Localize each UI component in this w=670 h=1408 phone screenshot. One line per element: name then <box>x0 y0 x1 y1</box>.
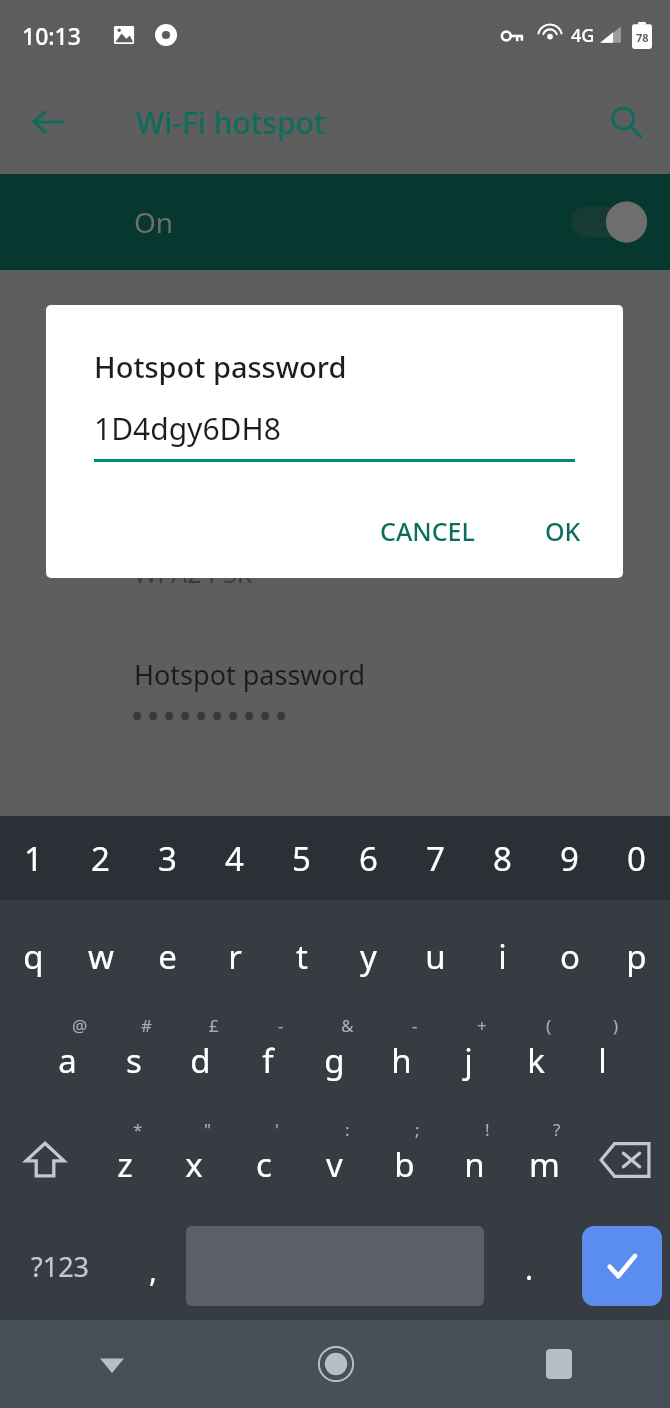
button[interactable]: Shift <box>0 1108 90 1212</box>
staticText: u <box>425 934 446 979</box>
button[interactable]: 1 <box>0 816 67 900</box>
staticText: Wi-Fi hotspot <box>136 102 326 143</box>
button[interactable]: s <box>100 1004 167 1108</box>
button[interactable]: ?123 <box>0 1212 120 1320</box>
button[interactable]: v <box>299 1108 369 1212</box>
staticText: 5 <box>292 836 311 881</box>
staticText: CANCEL <box>380 514 475 548</box>
staticText: 4G <box>571 23 595 48</box>
staticText: 3 <box>158 836 177 881</box>
button[interactable]: Backspace <box>579 1108 670 1212</box>
button[interactable]: CANCEL <box>364 504 491 558</box>
button[interactable]: . <box>484 1212 574 1320</box>
button[interactable]: Enter <box>582 1226 662 1306</box>
button[interactable]: e <box>134 900 201 1004</box>
staticText: t <box>296 934 308 979</box>
staticText: n <box>464 1142 485 1187</box>
staticText: z <box>117 1142 133 1187</box>
button[interactable]: f <box>234 1004 301 1108</box>
button[interactable]: u <box>402 900 469 1004</box>
staticText: ' <box>275 1118 279 1141</box>
staticText: * <box>133 1118 143 1141</box>
staticText: 1D4dgy6DH8 <box>94 408 281 449</box>
button[interactable]: Back <box>0 1320 224 1408</box>
staticText: f <box>262 1038 274 1083</box>
button[interactable]: 3 <box>134 816 201 900</box>
button[interactable]: 5 <box>268 816 335 900</box>
staticText: : <box>345 1118 350 1141</box>
button[interactable]: c <box>229 1108 299 1212</box>
staticText: WPA2 PSK <box>134 556 253 590</box>
button[interactable]: o <box>536 900 603 1004</box>
button[interactable]: h <box>368 1004 435 1108</box>
staticText: r <box>228 934 242 979</box>
staticText: a <box>58 1038 77 1083</box>
button[interactable]: w <box>67 900 134 1004</box>
button[interactable]: d <box>167 1004 234 1108</box>
staticText: v <box>326 1142 343 1187</box>
staticText: j <box>464 1038 473 1083</box>
staticText: 9 <box>560 836 579 881</box>
button[interactable]: t <box>268 900 335 1004</box>
button[interactable]: 4 <box>201 816 268 900</box>
button[interactable]: b <box>369 1108 439 1212</box>
button[interactable]: Recent apps <box>447 1320 670 1408</box>
button[interactable]: 0 <box>603 816 670 900</box>
staticText: w <box>88 934 114 979</box>
staticText: q <box>23 934 44 979</box>
staticText: ?123 <box>31 1248 90 1285</box>
staticText: y <box>360 934 377 979</box>
button[interactable]: z <box>90 1108 159 1212</box>
button[interactable]: j <box>435 1004 502 1108</box>
button[interactable]: OK <box>529 504 597 558</box>
button[interactable]: 6 <box>335 816 402 900</box>
button[interactable]: On <box>0 174 670 270</box>
button[interactable]: a <box>34 1004 100 1108</box>
button[interactable]: y <box>335 900 402 1004</box>
button[interactable]: x <box>159 1108 229 1212</box>
button[interactable]: 2 <box>67 816 134 900</box>
button[interactable]: i <box>469 900 536 1004</box>
staticText: 78 <box>636 30 649 45</box>
button[interactable]: k <box>502 1004 569 1108</box>
staticText: c <box>256 1142 272 1187</box>
staticText: m <box>529 1142 560 1187</box>
staticText: s <box>126 1038 142 1083</box>
button[interactable]: g <box>301 1004 368 1108</box>
button[interactable]: p <box>603 900 670 1004</box>
button[interactable]: r <box>201 900 268 1004</box>
button[interactable]: 8 <box>469 816 536 900</box>
staticText: OK <box>545 514 581 548</box>
button[interactable]: q <box>0 900 67 1004</box>
button[interactable]: Home <box>224 1320 447 1408</box>
staticText: 4 <box>225 836 244 881</box>
staticText: g <box>324 1038 345 1083</box>
staticText: 1 <box>24 836 43 881</box>
button[interactable]: Search <box>598 94 654 150</box>
button[interactable]: n <box>439 1108 509 1212</box>
staticText: 8 <box>493 836 512 881</box>
staticText: e <box>158 934 177 979</box>
staticText: - <box>412 1014 418 1037</box>
button[interactable]: , <box>120 1212 186 1320</box>
staticText: 2 <box>91 836 110 881</box>
staticText: 7 <box>426 836 445 881</box>
staticText: # <box>141 1014 152 1037</box>
staticText: o <box>560 934 580 979</box>
staticText: , <box>149 1250 158 1291</box>
button[interactable]: Back <box>20 94 76 150</box>
staticText: x <box>185 1142 203 1187</box>
button[interactable]: 9 <box>536 816 603 900</box>
staticText: Hotspot password <box>134 656 366 693</box>
staticText: ! <box>485 1118 490 1141</box>
staticText: . <box>525 1248 534 1289</box>
staticText: 6 <box>359 836 378 881</box>
staticText: k <box>527 1038 545 1083</box>
staticText: i <box>498 934 507 979</box>
staticText: h <box>391 1038 412 1083</box>
button[interactable]: l <box>569 1004 636 1108</box>
button[interactable]: 7 <box>402 816 469 900</box>
staticText: On <box>134 203 174 241</box>
button[interactable]: m <box>509 1108 579 1212</box>
